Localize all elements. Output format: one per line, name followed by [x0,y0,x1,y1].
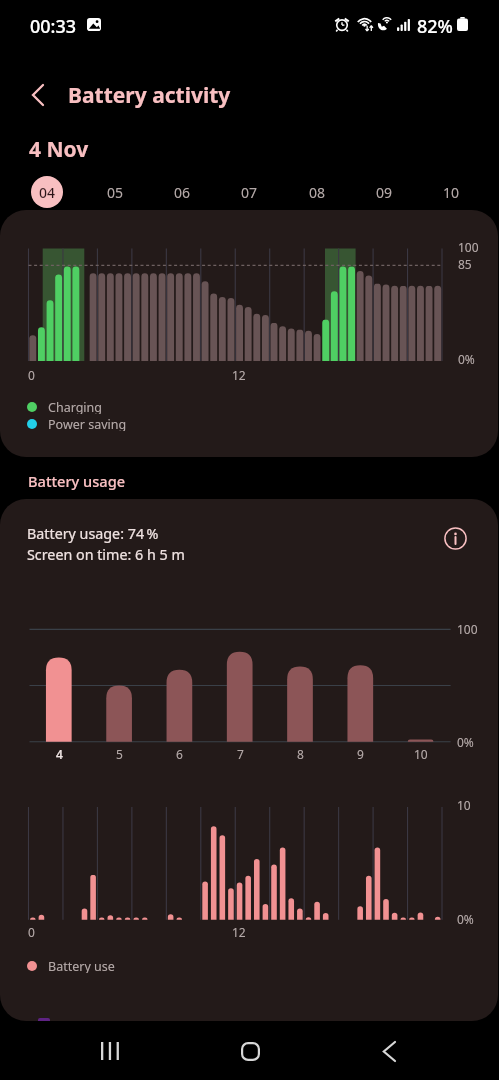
staticText: Battery activity [68,81,231,110]
staticText: Battery use [48,958,115,973]
staticText: 100 [458,239,479,255]
button[interactable]: 09 [361,169,407,215]
button[interactable]: 10 [428,169,474,215]
staticText: 09 [376,183,393,202]
staticText: 7 [237,746,244,762]
staticText: 05 [107,183,124,202]
staticText: 00:33 [30,14,77,39]
staticText: 0 [28,924,35,940]
staticText: 82% [417,14,453,39]
staticText: 06 [174,183,191,202]
staticText: 100 [457,621,478,637]
button[interactable]: Recent apps [88,1029,132,1073]
button[interactable]: Battery usage: 74 % [0,499,498,1021]
button[interactable]: Back [367,1029,411,1073]
staticText: 08 [309,183,326,202]
staticText: 85 [458,256,472,272]
staticText: 10 [414,746,428,762]
button[interactable]: 04 [24,169,70,215]
staticText: 8 [297,746,304,762]
staticText: 10 [457,797,471,813]
staticText: 10 [443,183,460,202]
staticText: 0% [458,351,475,367]
staticText: Power saving [48,416,127,431]
staticText: 04 [39,183,56,202]
button[interactable]: Information [440,523,470,553]
staticText: 12 [232,367,246,383]
staticText: 12 [232,924,246,940]
button[interactable]: Navigate up [16,73,60,117]
staticText: 6 [176,746,183,762]
staticText: Battery usage [28,471,126,491]
button[interactable]: Home [228,1029,272,1073]
staticText: 07 [241,183,258,202]
staticText: 0% [457,911,474,927]
button[interactable]: 05 [92,169,138,215]
staticText: 0% [457,734,474,750]
button[interactable]: 07 [226,169,272,215]
staticText: 4 [56,746,63,762]
button[interactable]: 08 [294,169,340,215]
staticText: 9 [357,746,364,762]
staticText: Battery usage: 74 % [27,524,159,543]
staticText: 5 [116,746,123,762]
staticText: 4 Nov [29,135,89,164]
button[interactable]: 0 [0,210,498,457]
button[interactable]: 06 [159,169,205,215]
staticText: Screen on time: 6 h 5 m [27,545,185,564]
staticText: Charging [48,399,103,414]
staticText: 0 [28,367,35,383]
